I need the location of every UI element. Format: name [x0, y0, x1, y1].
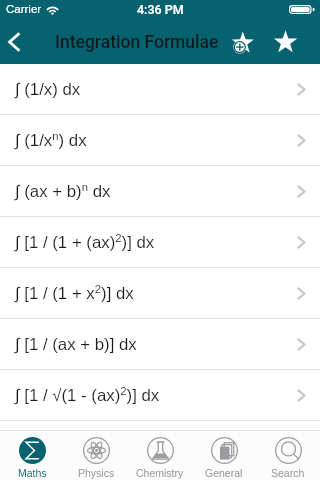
staticText: ∫ (1/x) dx	[15, 80, 81, 99]
staticText: Chemistry	[136, 467, 184, 479]
staticText: Maths	[18, 467, 47, 479]
staticText: Carrier	[6, 3, 42, 16]
button[interactable]: ∫ (1/x) dx	[0, 64, 320, 114]
button[interactable]: ∫ [1 / (1 + x2)] dx	[0, 268, 320, 318]
button[interactable]: ∫ (ax + b)n dx	[0, 166, 320, 216]
staticText: Physics	[78, 467, 115, 479]
staticText: ∫ [1 / (1 + (ax)2)] dx	[15, 232, 155, 252]
button[interactable]: Maths	[0, 431, 64, 480]
staticText: General	[205, 467, 243, 479]
button[interactable]: General	[192, 431, 256, 480]
button[interactable]: Chemistry	[128, 431, 192, 480]
staticText: Search	[271, 467, 305, 479]
button[interactable]: ∫ [1 / (ax + b)] dx	[0, 319, 320, 369]
button[interactable]: Add to favourites	[226, 25, 260, 59]
staticText: ∫ (1/xn) dx	[15, 130, 87, 150]
staticText: ∫ [1 / (ax + b)] dx	[15, 335, 137, 354]
button[interactable]: Physics	[64, 431, 128, 480]
button[interactable]: Back	[0, 20, 38, 64]
staticText: 4:36 PM	[137, 2, 184, 17]
button[interactable]: Search	[256, 431, 320, 480]
staticText: ∫ [1 / (1 + x2)] dx	[15, 283, 134, 303]
button[interactable]: ∫ (1/xn) dx	[0, 115, 320, 165]
staticText: ∫ [1 / √(1 - (ax)2)] dx	[15, 385, 160, 405]
button[interactable]: Favourites	[268, 25, 302, 59]
button[interactable]: ∫ [1 / (1 + (ax)2)] dx	[0, 217, 320, 267]
staticText: Integration Formulae	[55, 32, 219, 53]
button[interactable]: ∫ [1 / √(1 - (ax)2)] dx	[0, 370, 320, 420]
staticText: ∫ (ax + b)n dx	[15, 181, 111, 201]
